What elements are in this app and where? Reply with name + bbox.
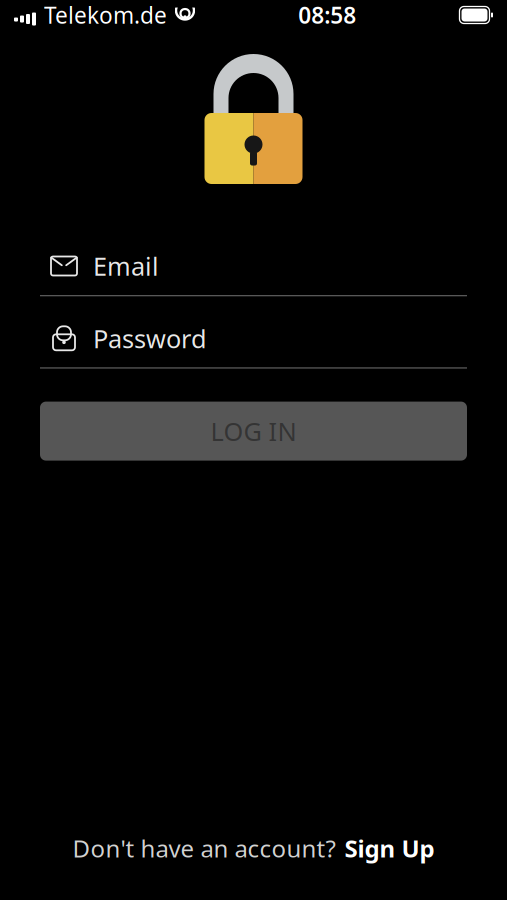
staticText: Email xyxy=(93,249,159,283)
button[interactable]: Email xyxy=(40,246,467,296)
button[interactable]: LOG IN xyxy=(40,402,467,461)
staticText: Password xyxy=(93,321,207,355)
staticText: Telekom.de xyxy=(44,0,167,30)
staticText: LOG IN xyxy=(210,414,296,448)
button[interactable]: Password xyxy=(40,318,467,369)
staticText: 08:58 xyxy=(298,0,356,30)
staticText: Don't have an account? xyxy=(72,832,335,864)
button[interactable]: Don't have an account? xyxy=(62,826,444,870)
staticText: Sign Up xyxy=(344,832,434,864)
